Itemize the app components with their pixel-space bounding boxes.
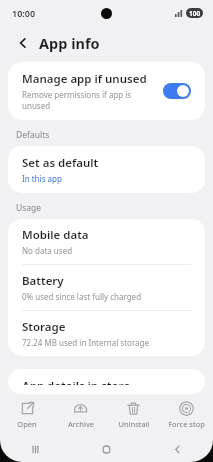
staticText: Uninstall	[118, 419, 150, 429]
button[interactable]: Set as default	[8, 146, 205, 193]
staticText: 0% used since last fully charged	[22, 291, 142, 302]
staticText: Archive	[68, 419, 94, 429]
staticText: Storage	[22, 319, 66, 335]
button[interactable]: Mobile data	[8, 219, 205, 264]
button[interactable]: Uninstall	[107, 394, 160, 436]
button[interactable]: Back	[142, 436, 213, 462]
button[interactable]: Archive	[54, 394, 107, 436]
button[interactable]: Home	[71, 436, 142, 462]
staticText: 100	[189, 9, 201, 18]
button[interactable]: Battery	[8, 265, 205, 310]
button[interactable]: Manage app if unused	[8, 62, 205, 120]
staticText: Usage	[16, 202, 42, 214]
button[interactable]: Storage	[8, 311, 205, 356]
button[interactable]: Recents	[0, 436, 71, 462]
staticText: App info	[39, 33, 100, 53]
staticText: Remove permissions if app is unused	[22, 89, 157, 111]
staticText: Set as default	[22, 155, 99, 171]
staticText: Defaults	[16, 129, 50, 141]
staticText: 72.24 MB used in Internal storage	[22, 337, 149, 348]
staticText: Open	[17, 419, 37, 429]
button[interactable]: Back	[12, 32, 34, 54]
staticText: Manage app if unused	[22, 71, 147, 87]
staticText: Battery	[22, 273, 64, 289]
button[interactable]: App details in store	[8, 369, 205, 394]
staticText: 10:00	[12, 7, 36, 19]
button[interactable]: Open	[0, 394, 54, 436]
staticText: Force stop	[168, 419, 205, 429]
staticText: No data used	[22, 245, 73, 256]
button[interactable]: Manage app if unused toggle	[163, 83, 191, 99]
staticText: In this app	[22, 173, 62, 184]
button[interactable]: Force stop	[160, 394, 213, 436]
staticText: App details in store	[22, 378, 131, 385]
staticText: Mobile data	[22, 227, 89, 243]
